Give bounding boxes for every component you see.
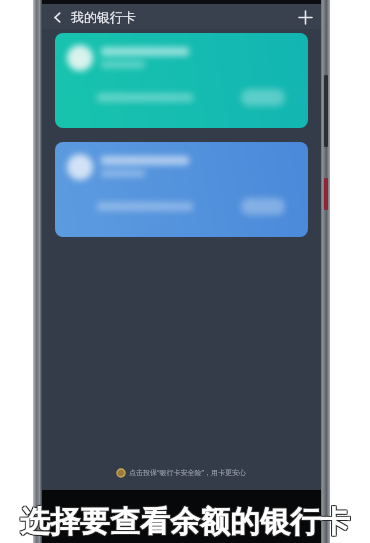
- button[interactable]: 点击投保“银行卡安全险”，用卡更安心: [42, 464, 321, 482]
- staticText: 点击投保“银行卡安全险”，用卡更安心: [129, 468, 247, 478]
- staticText: 选择要查看余额的银行卡: [21, 502, 351, 540]
- staticText: 选择要查看余额的银行卡: [19, 503, 349, 541]
- button[interactable]: [55, 33, 308, 128]
- staticText: 选择要查看余额的银行卡: [21, 503, 351, 541]
- staticText: 我的银行卡: [71, 9, 136, 25]
- staticText: 选择要查看余额的银行卡: [20, 502, 350, 540]
- staticText: 选择要查看余额的银行卡: [20, 504, 350, 542]
- button[interactable]: Add card: [294, 6, 316, 28]
- staticText: 选择要查看余额的银行卡: [19, 502, 349, 540]
- staticText: 选择要查看余额的银行卡: [20, 503, 350, 541]
- staticText: 选择要查看余额的银行卡: [19, 504, 349, 542]
- staticText: 选择要查看余额的银行卡: [21, 504, 351, 542]
- button[interactable]: Back: [46, 6, 68, 28]
- button[interactable]: [55, 142, 308, 237]
